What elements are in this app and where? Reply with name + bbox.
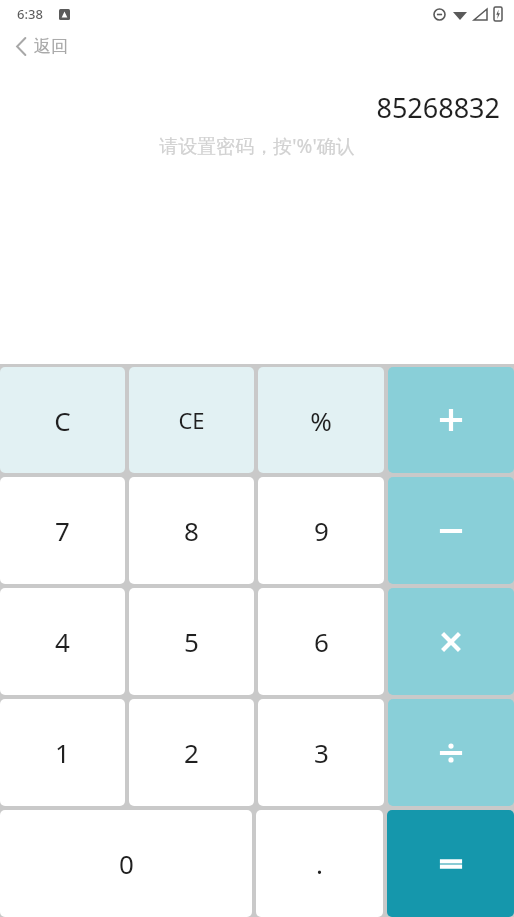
- staticText: 1: [55, 735, 70, 770]
- button[interactable]: 3: [258, 699, 384, 806]
- staticText: 7: [55, 513, 70, 548]
- button[interactable]: 0: [0, 810, 252, 917]
- staticText: 请设置密码，按'%'确认: [159, 133, 355, 159]
- button[interactable]: Divide: [388, 699, 514, 806]
- button[interactable]: 6: [258, 588, 384, 695]
- button[interactable]: 4: [0, 588, 125, 695]
- button[interactable]: 7: [0, 477, 125, 584]
- staticText: 6: [314, 624, 329, 659]
- staticText: 4: [55, 624, 70, 659]
- staticText: 5: [184, 624, 199, 659]
- staticText: 6:38: [17, 5, 43, 23]
- button[interactable]: Equals: [387, 810, 514, 917]
- button[interactable]: C: [0, 367, 125, 473]
- button[interactable]: .: [256, 810, 383, 917]
- staticText: .: [316, 846, 323, 881]
- button[interactable]: 返回: [0, 28, 514, 64]
- button[interactable]: CE: [129, 367, 254, 473]
- staticText: C: [54, 403, 71, 438]
- button[interactable]: %: [258, 367, 384, 473]
- button[interactable]: 8: [129, 477, 254, 584]
- staticText: 3: [314, 735, 329, 770]
- button[interactable]: 9: [258, 477, 384, 584]
- staticText: 返回: [34, 36, 68, 57]
- button[interactable]: Plus: [388, 367, 514, 473]
- button[interactable]: 2: [129, 699, 254, 806]
- staticText: 9: [314, 513, 329, 548]
- button[interactable]: Minus: [388, 477, 514, 584]
- staticText: 8: [184, 513, 199, 548]
- button[interactable]: 5: [129, 588, 254, 695]
- staticText: %: [310, 403, 332, 438]
- staticText: 0: [119, 846, 134, 881]
- staticText: 85268832: [376, 89, 500, 126]
- button[interactable]: Multiply: [388, 588, 514, 695]
- button[interactable]: 1: [0, 699, 125, 806]
- staticText: 2: [184, 735, 199, 770]
- staticText: CE: [178, 405, 205, 435]
